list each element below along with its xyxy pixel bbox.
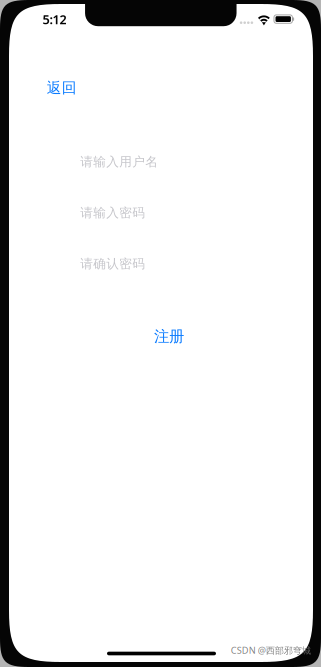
button[interactable]: 请输入用户名 bbox=[80, 147, 242, 177]
staticText: 注册 bbox=[154, 327, 184, 346]
button[interactable]: 请输入密码 bbox=[80, 198, 242, 228]
staticText: CSDN @西部邪穹城 bbox=[231, 644, 311, 656]
staticText: 请确认密码 bbox=[80, 256, 145, 272]
button[interactable]: 注册 bbox=[144, 319, 194, 354]
staticText: 返回 bbox=[47, 79, 77, 97]
staticText: 请输入用户名 bbox=[80, 154, 158, 170]
staticText: 5:12 bbox=[42, 11, 66, 28]
staticText: 请输入密码 bbox=[80, 205, 145, 221]
button[interactable]: 返回 bbox=[39, 72, 85, 104]
button[interactable]: 请确认密码 bbox=[80, 249, 242, 279]
